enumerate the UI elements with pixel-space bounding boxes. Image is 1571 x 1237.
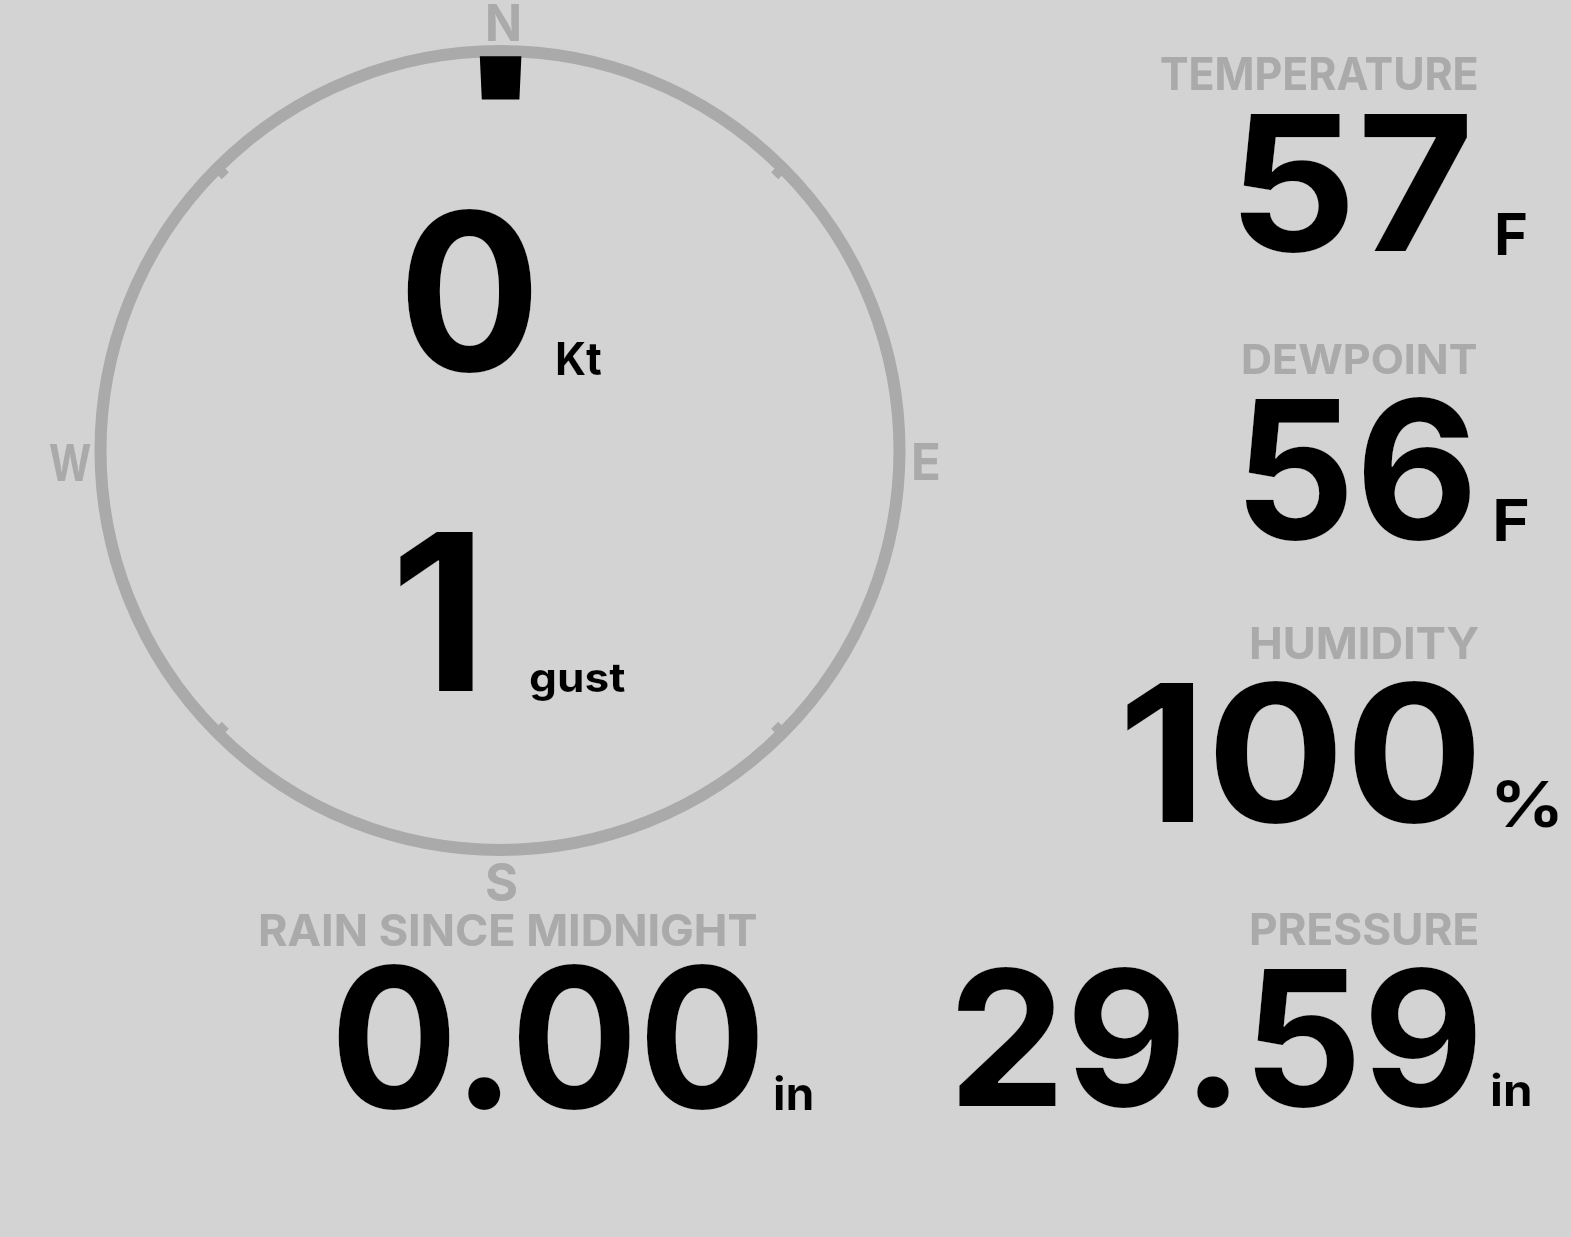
staticText: 1 [390,480,489,744]
staticText: E [911,431,941,493]
button[interactable]: Humidity 100 percent [1100,610,1560,840]
button[interactable]: Rain since midnight 0.00 inches [250,900,825,1125]
button[interactable]: Wind direction compass, wind from the no… [90,0,915,910]
staticText: PRESSURE [1249,902,1480,955]
staticText: RAIN SINCE MIDNIGHT [258,904,758,957]
staticText: 100 [1118,637,1484,869]
staticText: gust [529,653,626,702]
staticText: 0.00 [330,918,767,1155]
staticText: % [1490,766,1565,842]
staticText: in [1490,1064,1533,1117]
staticText: W [49,432,92,493]
staticText: HUMIDITY [1249,616,1479,670]
staticText: 0 [398,158,541,424]
staticText: in [773,1066,815,1121]
staticText: F [1494,199,1528,269]
staticText: S [485,850,518,914]
button[interactable]: Temperature 57 degrees Fahrenheit [1120,40,1560,270]
staticText: DEWPOINT [1241,334,1478,384]
button[interactable]: Pressure 29.59 inches of mercury [945,900,1535,1125]
button[interactable]: Wind speed 0 knots [370,185,630,390]
button[interactable]: Dewpoint 56 degrees Fahrenheit [1120,325,1560,555]
button[interactable]: Wind gust 1 knot [370,515,650,715]
staticText: N [485,0,522,53]
staticText: 29.59 [948,923,1484,1152]
staticText: Kt [555,331,602,386]
staticText: TEMPERATURE [1160,46,1479,100]
staticText: 56 [1234,352,1479,585]
staticText: 57 [1228,69,1475,296]
staticText: F [1492,485,1530,555]
